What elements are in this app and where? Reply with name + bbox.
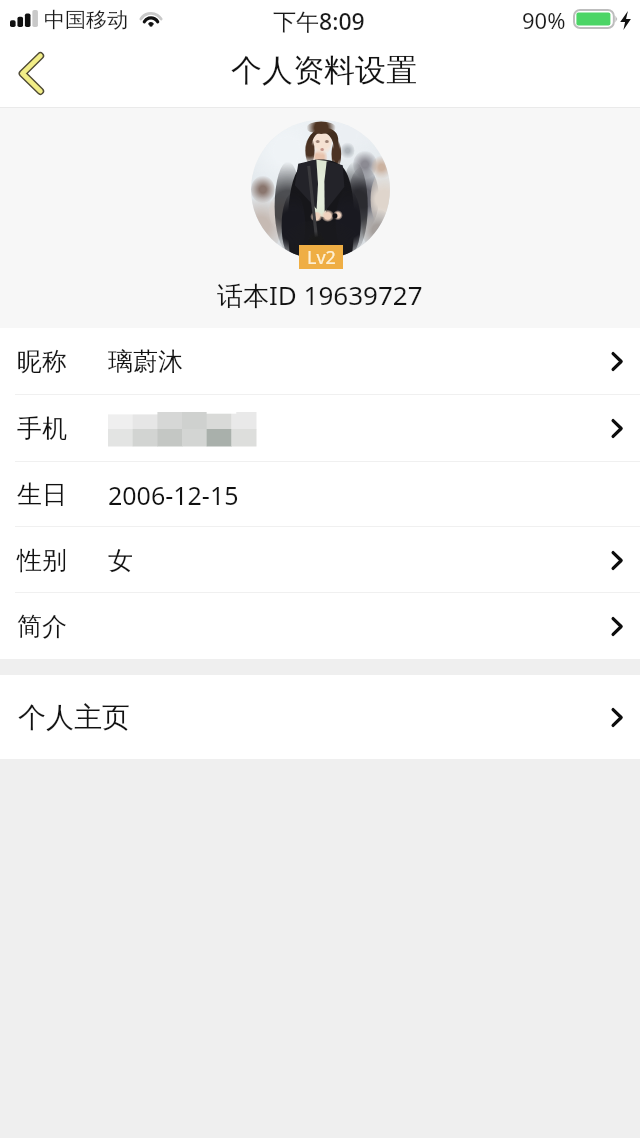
button[interactable]: 生日 bbox=[0, 462, 640, 527]
staticText: 女 bbox=[108, 545, 133, 576]
staticText: 生日 bbox=[17, 479, 67, 510]
staticText: 中国移动 bbox=[44, 7, 128, 33]
button[interactable]: Change avatar bbox=[251, 120, 390, 259]
button[interactable]: 手机 bbox=[0, 395, 640, 462]
staticText: 2006-12-15 bbox=[108, 478, 239, 512]
staticText: 璃蔚沐 bbox=[108, 346, 183, 377]
staticText: 下午8:09 bbox=[273, 5, 365, 36]
staticText: 个人资料设置 bbox=[231, 51, 417, 90]
button[interactable]: Back bbox=[0, 40, 72, 108]
staticText: 90% bbox=[522, 5, 566, 35]
staticText: 性别 bbox=[17, 545, 67, 576]
button[interactable]: 简介 bbox=[0, 593, 640, 659]
staticText: 昵称 bbox=[17, 346, 67, 377]
staticText: Lv2 bbox=[307, 245, 336, 269]
button[interactable]: 性别 bbox=[0, 527, 640, 593]
staticText: 个人主页 bbox=[18, 700, 130, 735]
staticText: 话本ID 19639727 bbox=[217, 277, 423, 313]
button[interactable]: 昵称 bbox=[0, 328, 640, 395]
staticText: 手机 bbox=[17, 413, 67, 444]
button[interactable]: 个人主页 bbox=[0, 675, 640, 759]
staticText: 简介 bbox=[17, 611, 67, 642]
